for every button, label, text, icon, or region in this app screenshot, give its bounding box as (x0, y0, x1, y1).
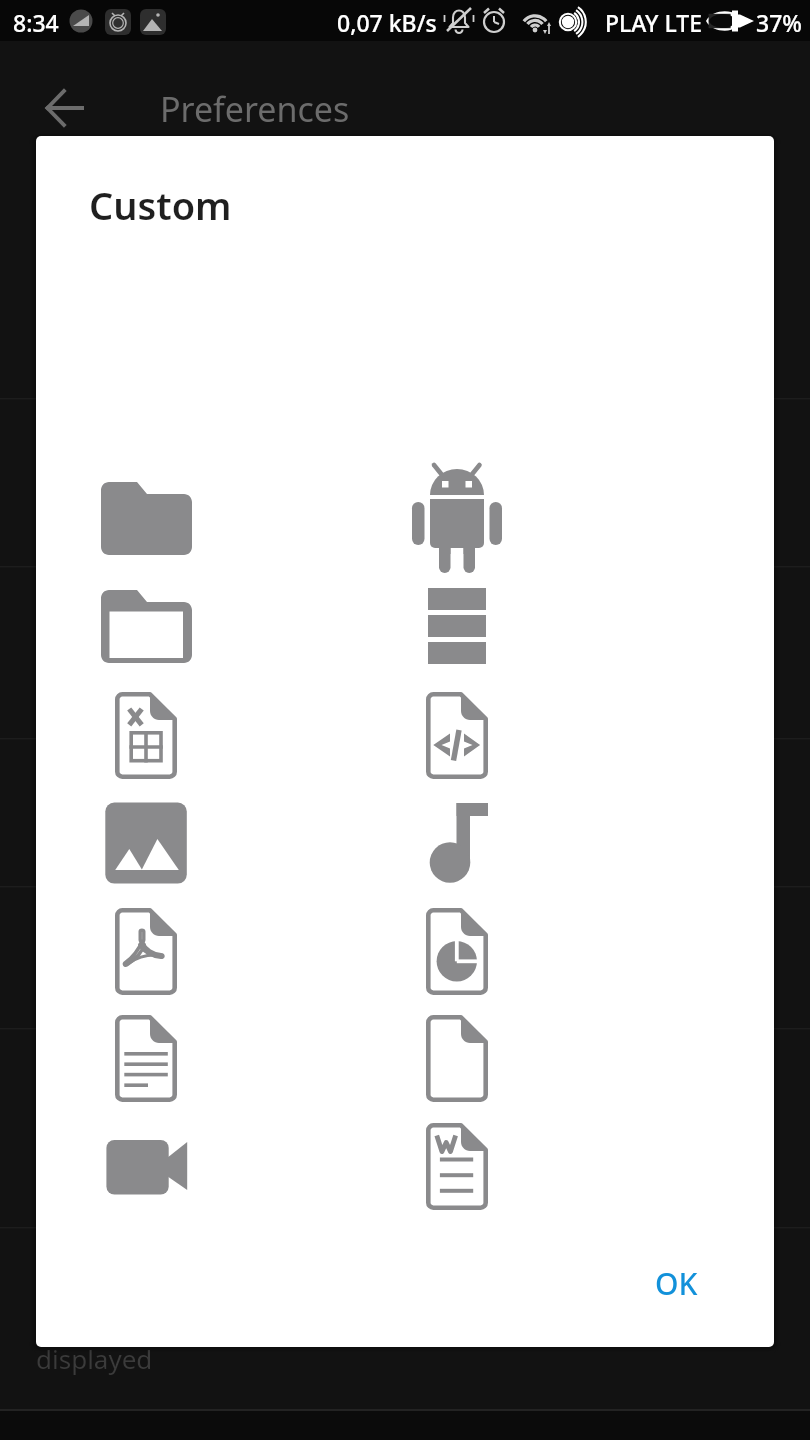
staticText: 37% (756, 7, 802, 38)
staticText: Custom (89, 179, 232, 231)
staticText: 0,07 kB/s (337, 7, 437, 38)
button[interactable]: Back (22, 74, 106, 142)
staticText: OK (655, 1263, 698, 1304)
staticText: Preferences (160, 86, 350, 132)
staticText: 8:34 (13, 7, 59, 38)
button[interactable]: OK (630, 1247, 722, 1319)
staticText: displayed (36, 1341, 153, 1376)
staticText: PLAY LTE (605, 7, 702, 38)
